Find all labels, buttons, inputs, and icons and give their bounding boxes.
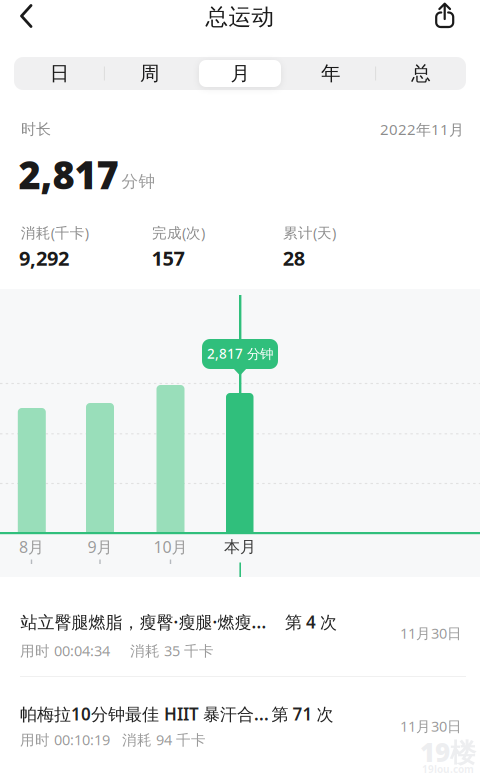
staticText: 第 4 次 [285, 610, 337, 634]
staticText: 10月 [153, 536, 187, 558]
staticText: 消耗(千卡) [21, 223, 89, 243]
button[interactable]: 帕梅拉10分钟最佳 HIIT 暴汗合... [0, 676, 480, 768]
staticText: 日 [50, 61, 69, 86]
staticText: 站立臀腿燃脂，瘦臀·瘦腿·燃瘦... [20, 610, 266, 634]
staticText: 消耗 94 千卡 [122, 730, 206, 749]
button[interactable]: Share [432, 1, 458, 29]
button[interactable]: 站立臀腿燃脂，瘦臀·瘦腿·燃瘦... [0, 588, 480, 676]
staticText: 总运动 [205, 3, 274, 31]
staticText: 完成(次) [152, 223, 205, 243]
staticText: 19lou.com [422, 762, 474, 776]
staticText: 19楼 [420, 734, 476, 770]
button[interactable]: Back [14, 1, 38, 31]
staticText: 用时 00:10:19 [20, 730, 110, 749]
staticText: 时长 [21, 120, 51, 139]
staticText: 消耗 35 千卡 [130, 641, 214, 660]
staticText: 总 [411, 61, 430, 86]
staticText: 本月 [224, 537, 256, 557]
button[interactable]: 年 [285, 57, 375, 90]
button[interactable]: 日 [14, 57, 104, 90]
staticText: 157 [151, 244, 184, 272]
button[interactable]: 月 [195, 57, 285, 90]
button[interactable]: 周 [105, 57, 195, 90]
staticText: 9月 [87, 536, 112, 558]
staticText: 月 [230, 61, 249, 86]
button[interactable]: 总 [376, 57, 466, 90]
staticText: 年 [321, 61, 340, 86]
staticText: 周 [140, 61, 159, 86]
staticText: 帕梅拉10分钟最佳 HIIT 暴汗合... [20, 702, 269, 726]
staticText: 2,817 [18, 149, 118, 200]
staticText: 分钟 [121, 171, 155, 192]
staticText: 2,817 分钟 [207, 344, 273, 363]
staticText: 28 [283, 244, 305, 272]
staticText: 用时 00:04:34 [20, 641, 110, 660]
staticText: 8月 [19, 536, 44, 558]
staticText: 累计(天) [283, 223, 336, 243]
staticText: 2022年11月 [380, 119, 464, 139]
staticText: 9,292 [19, 244, 69, 272]
staticText: 第 71 次 [272, 702, 334, 726]
staticText: 11月30日 [400, 623, 462, 643]
staticText: 11月30日 [400, 716, 462, 736]
